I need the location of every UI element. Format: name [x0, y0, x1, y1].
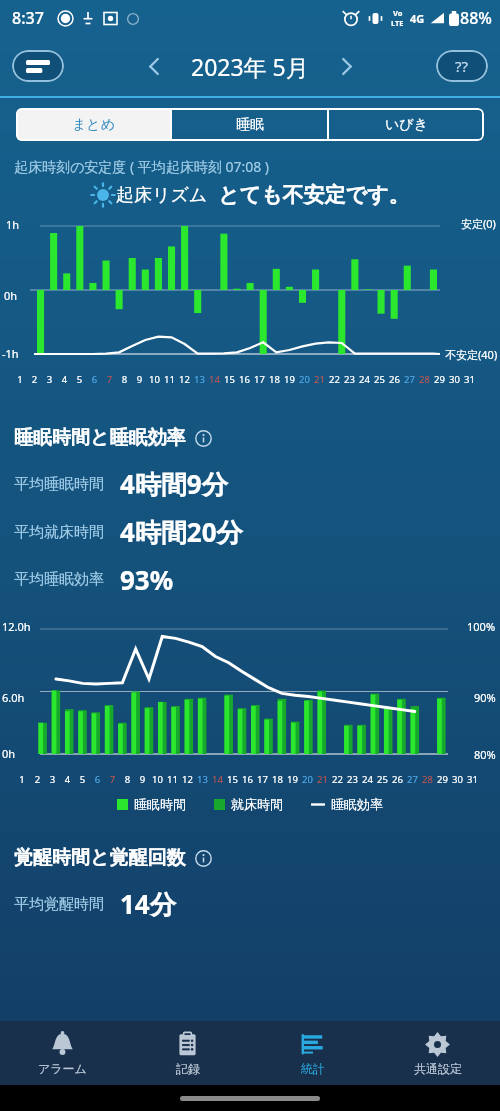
staticText: 記録	[176, 1061, 200, 1076]
staticText: 88%	[460, 7, 492, 29]
staticText: -1h	[2, 346, 19, 361]
staticText: 93%	[120, 562, 174, 597]
staticText: 28	[417, 373, 432, 386]
staticText: 16	[237, 373, 252, 386]
button[interactable]: Info	[192, 427, 214, 449]
staticText: 安定(0)	[461, 216, 496, 231]
staticText: 22	[330, 773, 345, 786]
staticText: 0h	[2, 746, 16, 761]
staticText: 24	[357, 373, 372, 386]
staticText: 3	[42, 373, 57, 386]
staticText: 14	[207, 373, 222, 386]
staticText: 26	[387, 373, 402, 386]
button[interactable]: 記録	[125, 1021, 250, 1085]
staticText: 15	[225, 773, 240, 786]
staticText: 17	[255, 773, 270, 786]
staticText: 80%	[474, 747, 496, 762]
staticText: 2	[27, 373, 42, 386]
button[interactable]: 共通設定	[375, 1021, 500, 1085]
staticText: 90%	[474, 690, 496, 705]
button[interactable]: Menu	[12, 50, 64, 82]
staticText: 25	[372, 373, 387, 386]
staticText: 21	[312, 373, 327, 386]
staticText: 17	[252, 373, 267, 386]
staticText: 24	[360, 773, 375, 786]
staticText: 2023年 5月	[191, 51, 309, 82]
staticText: いびき	[385, 116, 428, 134]
staticText: ??	[455, 56, 469, 76]
staticText: 29	[435, 773, 450, 786]
staticText: 4時間9分	[120, 466, 228, 502]
staticText: 覚醒時間と覚醒回数	[14, 846, 186, 870]
staticText: 18	[267, 373, 282, 386]
button[interactable]: いびき	[329, 108, 484, 141]
staticText: 13	[195, 773, 210, 786]
staticText: 29	[432, 373, 447, 386]
staticText: まとめ	[72, 116, 115, 134]
staticText: 20	[297, 373, 312, 386]
staticText: 30	[450, 773, 465, 786]
staticText: 11	[165, 773, 180, 786]
staticText: 平均睡眠効率	[14, 570, 104, 589]
staticText: 睡眠時間と睡眠効率	[14, 426, 186, 450]
staticText: 30	[447, 373, 462, 386]
staticText: 睡眠時間	[134, 796, 186, 812]
button[interactable]: 睡眠	[172, 108, 327, 141]
button[interactable]: Previous month	[131, 43, 177, 89]
staticText: 16	[240, 773, 255, 786]
staticText: 1	[14, 773, 30, 786]
staticText: 4時間20分	[120, 514, 243, 550]
staticText: 23	[342, 373, 357, 386]
staticText: 25	[375, 773, 390, 786]
staticText: 31	[465, 773, 480, 786]
staticText: 19	[285, 773, 300, 786]
staticText: 18	[270, 773, 285, 786]
staticText: 15	[222, 373, 237, 386]
staticText: 6	[90, 773, 105, 786]
staticText: 睡眠効率	[331, 796, 383, 812]
staticText: 不安定(40)	[445, 347, 498, 362]
staticText: 5	[75, 773, 90, 786]
staticText: Vo	[393, 8, 403, 18]
staticText: アラーム	[38, 1061, 87, 1076]
staticText: 平均就床時間	[14, 523, 104, 542]
staticText: 睡眠	[236, 116, 264, 134]
staticText: 31	[462, 373, 477, 386]
staticText: 28	[420, 773, 435, 786]
staticText: 共通設定	[414, 1061, 462, 1076]
staticText: 7	[102, 373, 117, 386]
staticText: 20	[300, 773, 315, 786]
staticText: 12.0h	[2, 619, 31, 634]
staticText: 4	[57, 373, 72, 386]
staticText: 14分	[120, 886, 176, 922]
staticText: 10	[150, 773, 165, 786]
staticText: 26	[390, 773, 405, 786]
staticText: 起床時刻の安定度 ( 平均起床時刻 07:08 )	[14, 157, 270, 176]
staticText: 8	[120, 773, 135, 786]
staticText: 21	[315, 773, 330, 786]
staticText: 5	[72, 373, 87, 386]
staticText: 22	[327, 373, 342, 386]
staticText: 12	[177, 373, 192, 386]
staticText: 平均覚醒時間	[14, 895, 104, 914]
button[interactable]: まとめ	[16, 108, 170, 141]
staticText: 100%	[467, 619, 496, 634]
staticText: 27	[405, 773, 420, 786]
staticText: 4G	[410, 11, 425, 26]
staticText: 平均睡眠時間	[14, 475, 104, 494]
staticText: LTE	[391, 18, 404, 28]
button[interactable]: 統計	[250, 1021, 375, 1085]
staticText: 2	[30, 773, 45, 786]
staticText: 1h	[6, 217, 20, 232]
staticText: 13	[192, 373, 207, 386]
staticText: 1	[13, 373, 27, 386]
staticText: 0h	[4, 288, 18, 303]
staticText: 19	[282, 373, 297, 386]
staticText: 11	[162, 373, 177, 386]
button[interactable]: アラーム	[0, 1021, 125, 1085]
button[interactable]: Help	[436, 50, 488, 82]
button[interactable]: Next month	[323, 43, 369, 89]
button[interactable]: Info	[192, 847, 214, 869]
staticText: 6.0h	[2, 690, 25, 705]
staticText: 9	[132, 373, 147, 386]
